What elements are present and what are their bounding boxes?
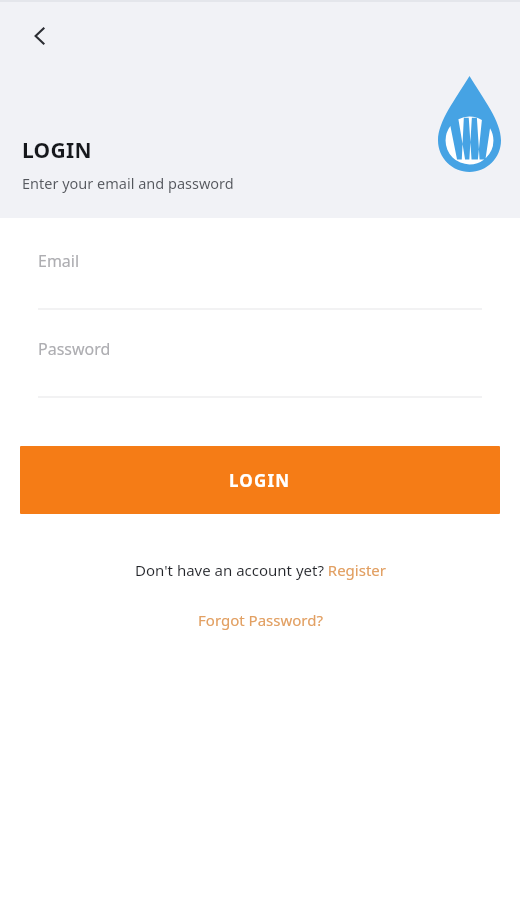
button[interactable]: LOGIN [20,446,500,514]
staticText: LOGIN [229,469,291,492]
staticText: Password [38,338,111,360]
staticText: Don't have an account yet? Register [135,560,386,580]
staticText: LOGIN [22,136,92,165]
button[interactable]: Email [38,250,482,310]
staticText: Enter your email and password [22,173,234,193]
button[interactable]: Back [16,12,64,60]
staticText: Email [38,250,80,272]
button[interactable]: Password [38,338,482,398]
staticText: Forgot Password? [198,610,323,630]
button[interactable]: Forgot Password? [0,610,520,630]
button[interactable]: Don't have an account yet? Register [0,560,520,580]
